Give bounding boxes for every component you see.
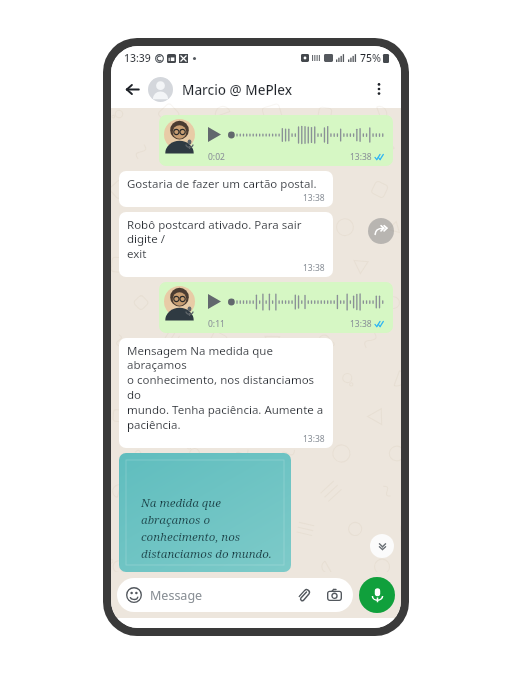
button[interactable]: 0:02 <box>159 115 393 166</box>
staticText: 13:38 <box>303 262 325 274</box>
button[interactable]: Robô postcard ativado. Para sair digite … <box>119 212 333 277</box>
staticText: Robô postcard ativado. Para sair digite … <box>127 217 325 262</box>
button[interactable]: Attach <box>293 585 313 605</box>
button[interactable]: Mensagem Na medida que abraçamos o conhe… <box>119 338 333 448</box>
staticText: 0:02 <box>208 151 225 163</box>
button[interactable]: Camera <box>324 585 344 605</box>
button[interactable]: Message <box>117 578 353 612</box>
staticText: Gostaria de fazer um cartão postal. <box>127 176 317 192</box>
button[interactable]: Record voice message <box>359 577 395 613</box>
staticText: 13:38 <box>303 433 325 445</box>
button[interactable]: 0:11 <box>159 282 393 333</box>
staticText: 13:38 <box>350 151 372 163</box>
staticText: 75% <box>360 51 381 65</box>
staticText: Marcio @ MePlex <box>182 81 293 99</box>
button[interactable]: Marcio @ MePlex <box>148 77 367 102</box>
staticText: 13:39 <box>124 51 151 65</box>
staticText: Message <box>150 587 203 604</box>
button[interactable]: Na medida que abraçamos o conhecimento, … <box>119 453 291 572</box>
button[interactable]: Forward <box>368 218 394 244</box>
staticText: 13:38 <box>303 192 325 204</box>
button[interactable]: More options <box>367 77 391 101</box>
button[interactable]: Gostaria de fazer um cartão postal. <box>119 171 333 207</box>
staticText: Mensagem Na medida que abraçamos o conhe… <box>127 343 325 433</box>
staticText: Na medida que abraçamos o conhecimento, … <box>141 495 277 558</box>
button[interactable]: Back <box>121 78 143 100</box>
staticText: 0:11 <box>208 318 225 330</box>
button[interactable]: Scroll to bottom <box>370 534 394 558</box>
staticText: 13:38 <box>350 318 372 330</box>
